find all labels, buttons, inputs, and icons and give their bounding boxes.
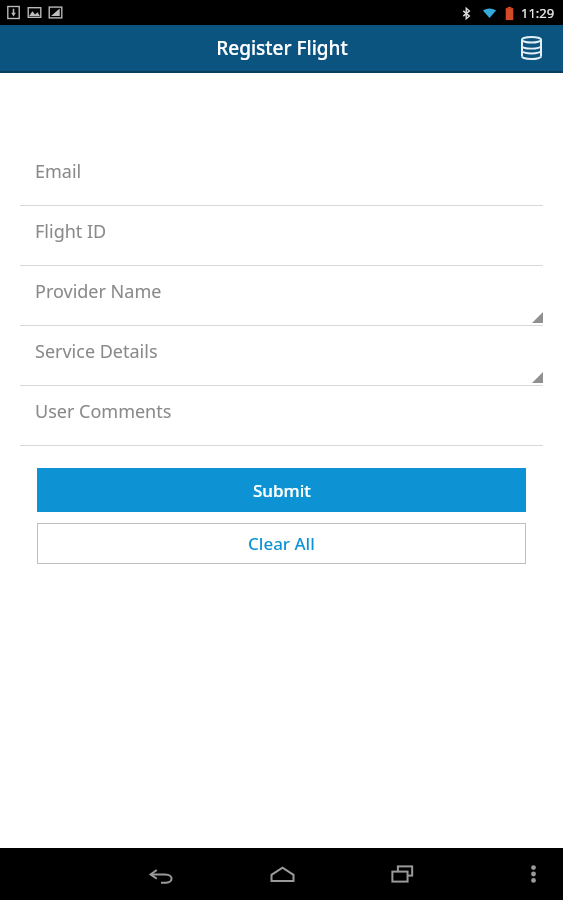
- staticText: Provider Name: [35, 279, 162, 304]
- button[interactable]: More options: [513, 854, 553, 894]
- button[interactable]: Provider Name: [20, 266, 543, 326]
- button[interactable]: Recent apps: [372, 848, 432, 900]
- staticText: Clear All: [248, 532, 315, 555]
- button[interactable]: Database: [509, 26, 553, 70]
- button[interactable]: User Comments: [20, 386, 543, 446]
- button[interactable]: Back: [132, 848, 192, 900]
- staticText: Email: [35, 159, 82, 184]
- staticText: User Comments: [35, 399, 172, 424]
- button[interactable]: Flight ID: [20, 206, 543, 266]
- staticText: Flight ID: [35, 219, 107, 244]
- button[interactable]: Email: [20, 146, 543, 206]
- staticText: 11:29: [521, 4, 555, 22]
- button[interactable]: Service Details: [20, 326, 543, 386]
- button[interactable]: Home: [252, 848, 312, 900]
- staticText: Register Flight: [216, 35, 348, 61]
- button[interactable]: Clear All: [37, 523, 526, 564]
- staticText: Service Details: [35, 339, 158, 364]
- staticText: Submit: [253, 479, 311, 502]
- button[interactable]: Submit: [37, 468, 526, 512]
